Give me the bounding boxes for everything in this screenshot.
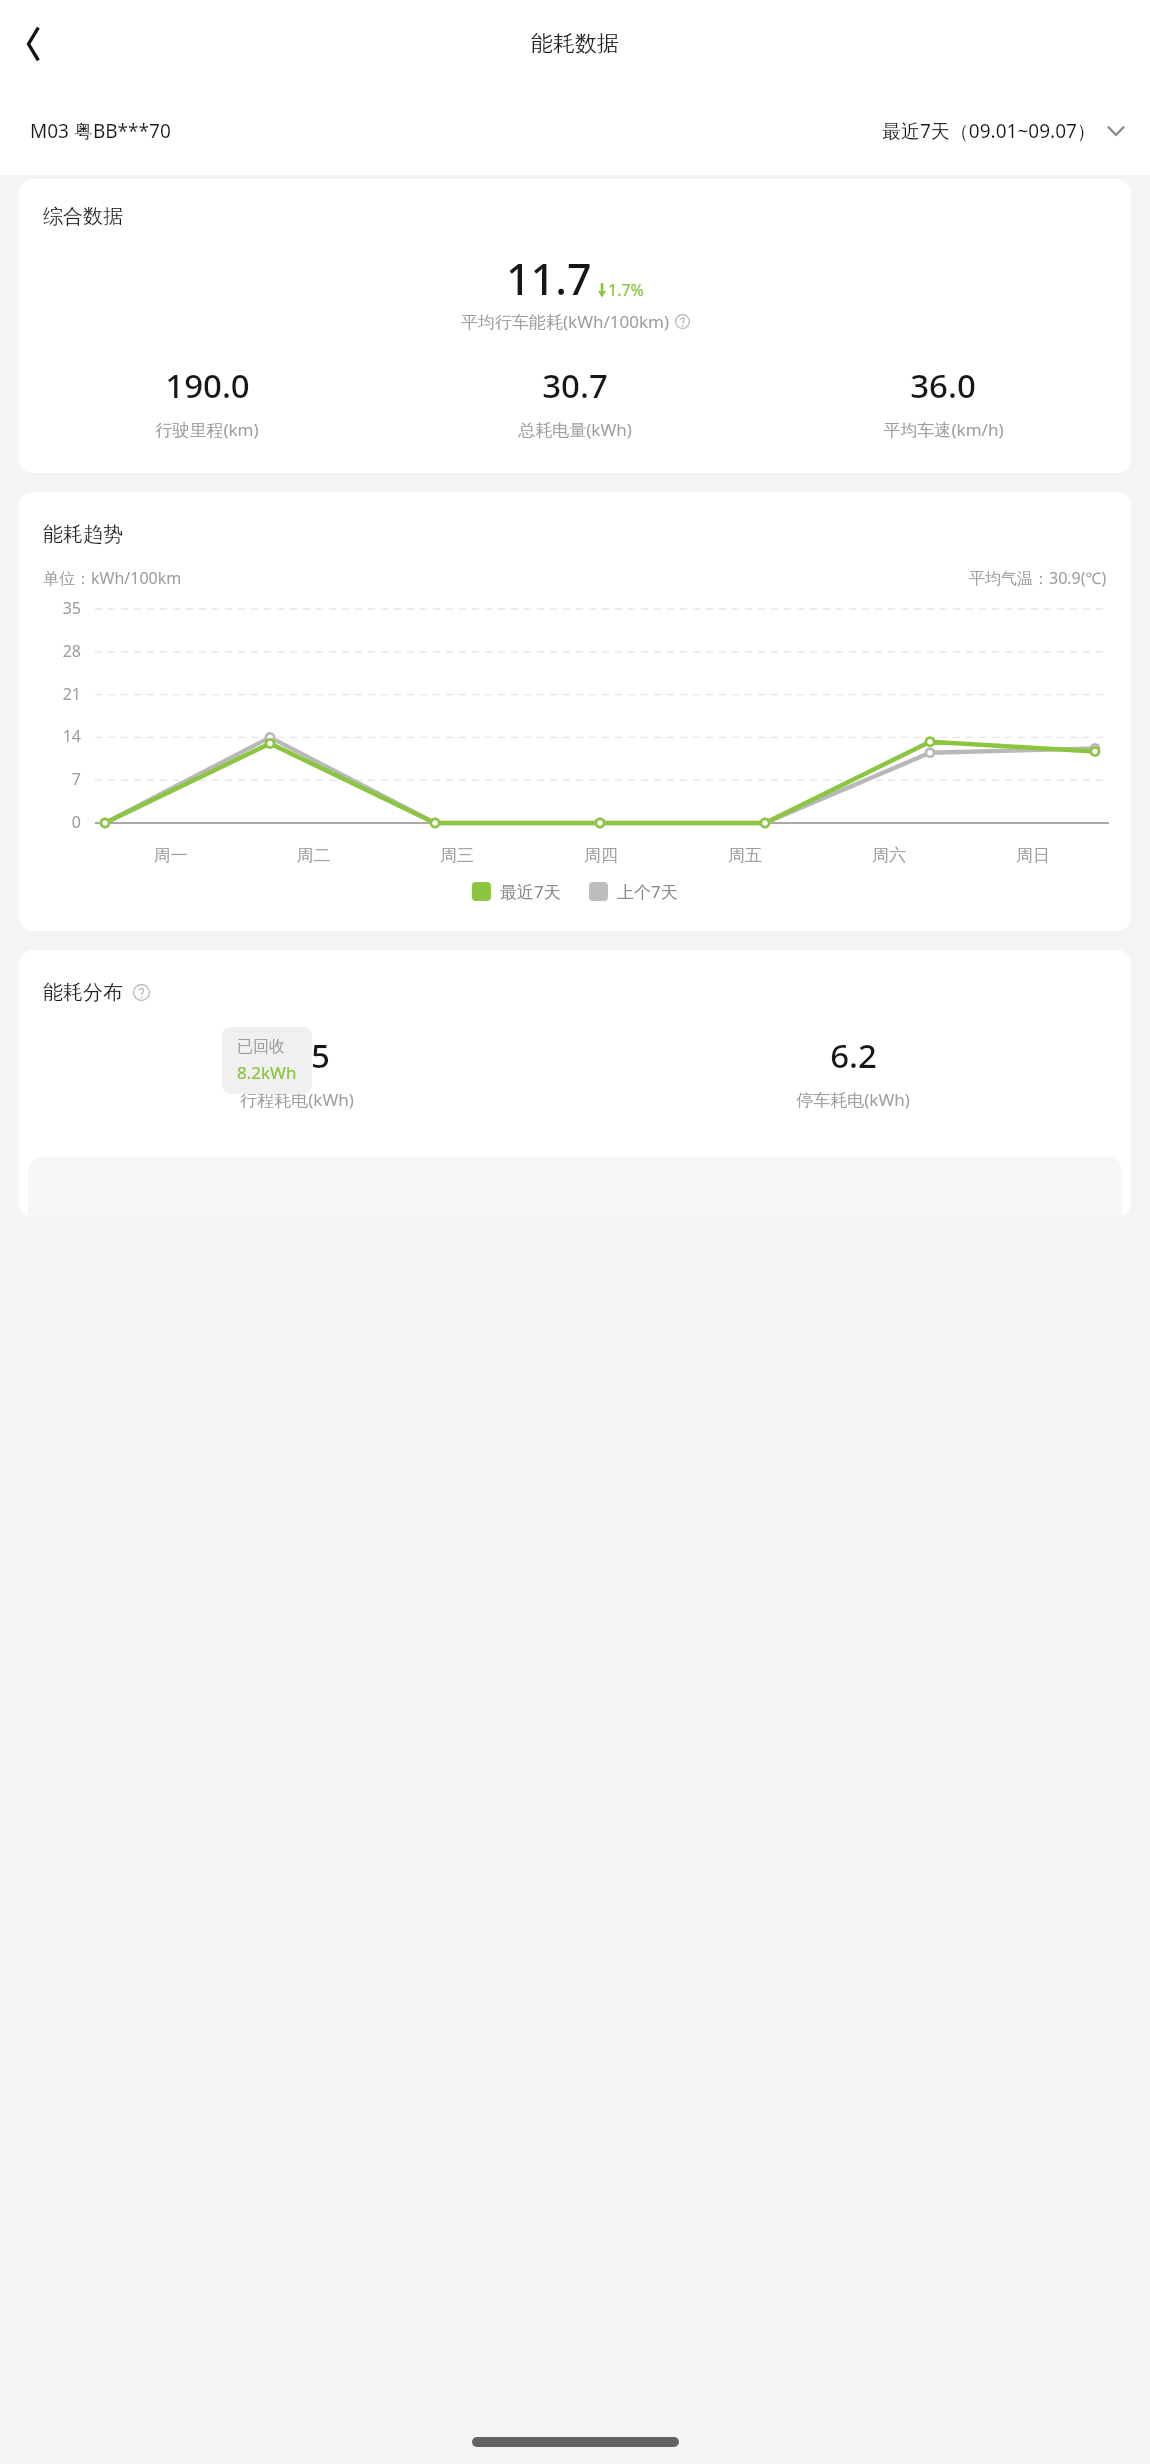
button[interactable]: 30.7	[391, 363, 759, 441]
staticText: 能耗数据	[531, 30, 619, 58]
button[interactable]: 最近7天（09.01~09.07）	[882, 118, 1128, 144]
button[interactable]: 36.0	[759, 363, 1127, 441]
staticText: 周四	[529, 845, 673, 866]
staticText: 35	[43, 597, 81, 619]
staticText: 8.2kWh	[237, 1061, 297, 1084]
staticText: M03 粤BB***70	[30, 118, 171, 144]
staticText: 周五	[673, 845, 817, 866]
staticText: 0	[43, 811, 81, 833]
button[interactable]: 上个7天	[589, 880, 678, 903]
button[interactable]: 已回收	[222, 1027, 312, 1094]
staticText: 28	[43, 640, 81, 662]
staticText: 综合数据	[43, 204, 123, 229]
staticText: 平均气温：30.9(℃)	[969, 567, 1107, 589]
staticText: 11.7	[506, 249, 592, 308]
staticText: 21	[43, 683, 81, 705]
staticText: 能耗分布	[43, 980, 123, 1005]
staticText: 6.2	[830, 1033, 877, 1078]
staticText: 总耗电量(kWh)	[518, 418, 632, 441]
staticText: 36.0	[910, 363, 976, 408]
staticText: 停车耗电(kWh)	[796, 1088, 910, 1111]
staticText: 上个7天	[617, 880, 678, 903]
staticText: 最近7天	[500, 880, 561, 903]
staticText: 已回收	[237, 1037, 285, 1057]
staticText: 平均行车能耗(kWh/100km)	[461, 310, 670, 333]
staticText: 行驶里程(km)	[155, 418, 259, 441]
staticText: 周六	[817, 845, 961, 866]
staticText: 周二	[242, 845, 385, 866]
staticText: 单位：kWh/100km	[43, 567, 182, 589]
staticText: 30.7	[542, 363, 608, 408]
staticText: 最近7天（09.01~09.07）	[882, 118, 1096, 144]
button[interactable]: 最近7天	[472, 880, 561, 903]
staticText: 1.7%	[608, 279, 644, 301]
staticText: 7	[43, 768, 81, 790]
staticText: 周三	[385, 845, 529, 866]
staticText: 190.0	[165, 363, 250, 408]
button[interactable]: 6.2	[575, 1033, 1131, 1111]
staticText: 14	[43, 725, 81, 747]
staticText: 周一	[99, 845, 242, 866]
button[interactable]: 190.0	[23, 363, 391, 441]
button[interactable]: 24.5	[19, 1033, 575, 1111]
staticText: 平均车速(km/h)	[883, 418, 1004, 441]
button[interactable]: Back	[4, 15, 62, 73]
staticText: 行程耗电(kWh)	[240, 1088, 354, 1111]
staticText: 周日	[961, 845, 1105, 866]
staticText: 能耗趋势	[43, 522, 123, 547]
staticText: 24.5	[264, 1033, 330, 1078]
